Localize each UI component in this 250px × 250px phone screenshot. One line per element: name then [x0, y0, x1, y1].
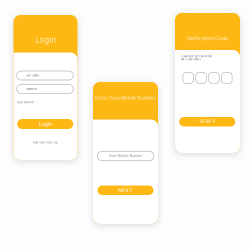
staticText: Enter Mobile Number	[109, 154, 142, 158]
staticText: NEXT	[118, 187, 133, 193]
staticText: Verification Code	[187, 35, 228, 42]
button[interactable]: Enter Mobile Number	[97, 151, 154, 161]
button[interactable]: New User? sign Up	[13, 139, 77, 145]
button[interactable]: Login	[17, 119, 73, 129]
staticText: Password	[25, 87, 37, 91]
button[interactable]: VERIFY	[179, 117, 235, 126]
staticText: Enter Your Mobile Number	[95, 95, 156, 101]
staticText: User Name	[25, 74, 39, 77]
staticText: Login	[35, 35, 55, 45]
staticText: New User? sign Up	[33, 141, 58, 144]
staticText: Forget Password?	[17, 101, 34, 104]
button[interactable]: User Name	[17, 71, 73, 80]
button[interactable]: Forget Password?	[17, 100, 47, 105]
button[interactable]: NEXT	[97, 185, 153, 195]
button[interactable]: Password	[17, 84, 73, 93]
staticText: Login	[39, 121, 52, 127]
staticText: VERIFY	[199, 119, 215, 124]
staticText: Please enter verification code sent to y…	[180, 55, 211, 61]
